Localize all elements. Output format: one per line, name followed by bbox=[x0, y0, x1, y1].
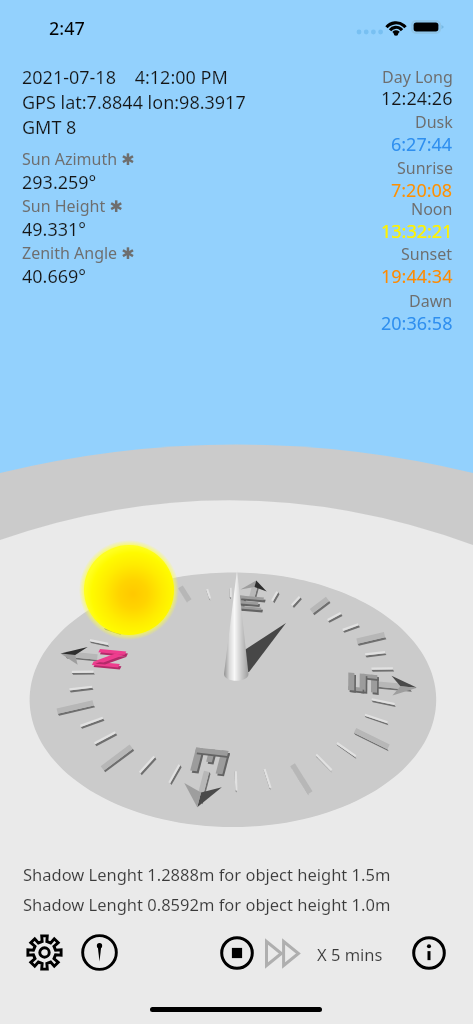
staticText: 40.669° bbox=[22, 264, 87, 289]
staticText: Shadow Lenght 0.8592m for object height … bbox=[23, 893, 391, 915]
staticText: X 5 mins bbox=[317, 943, 383, 965]
staticText: Dusk bbox=[415, 111, 453, 133]
staticText: Sun Height ✱ bbox=[22, 195, 123, 217]
staticText: 13:32:21 bbox=[381, 219, 453, 244]
staticText: 19:44:34 bbox=[381, 264, 453, 289]
staticText: 293.259° bbox=[22, 170, 97, 195]
button[interactable]: Settings bbox=[26, 934, 63, 971]
staticText: GPS lat:7.8844 lon:98.3917 bbox=[22, 90, 246, 115]
staticText: 20:36:58 bbox=[381, 311, 453, 336]
staticText: 6:27:44 bbox=[391, 132, 453, 157]
staticText: Sun Azimuth ✱ bbox=[22, 148, 135, 170]
staticText: Dawn bbox=[409, 290, 453, 312]
staticText: 12:24:26 bbox=[381, 86, 453, 111]
staticText: 2021-07-18 4:12:00 PM bbox=[22, 65, 228, 90]
button[interactable]: Info bbox=[412, 936, 446, 970]
staticText: 2:47 bbox=[49, 16, 85, 41]
button[interactable]: Stop bbox=[220, 936, 254, 970]
staticText: GMT 8 bbox=[22, 115, 77, 140]
staticText: Day Long bbox=[382, 66, 453, 88]
staticText: Shadow Lenght 1.2888m for object height … bbox=[23, 863, 391, 885]
staticText: 7:20:08 bbox=[391, 178, 453, 203]
staticText: Sunrise bbox=[397, 157, 453, 179]
button[interactable]: Fast forward bbox=[261, 934, 307, 972]
staticText: Zenith Angle ✱ bbox=[22, 242, 135, 264]
staticText: Noon bbox=[411, 198, 453, 220]
staticText: Sunset bbox=[401, 243, 453, 265]
staticText: 49.331° bbox=[22, 217, 87, 242]
button[interactable]: Location bbox=[81, 934, 118, 971]
